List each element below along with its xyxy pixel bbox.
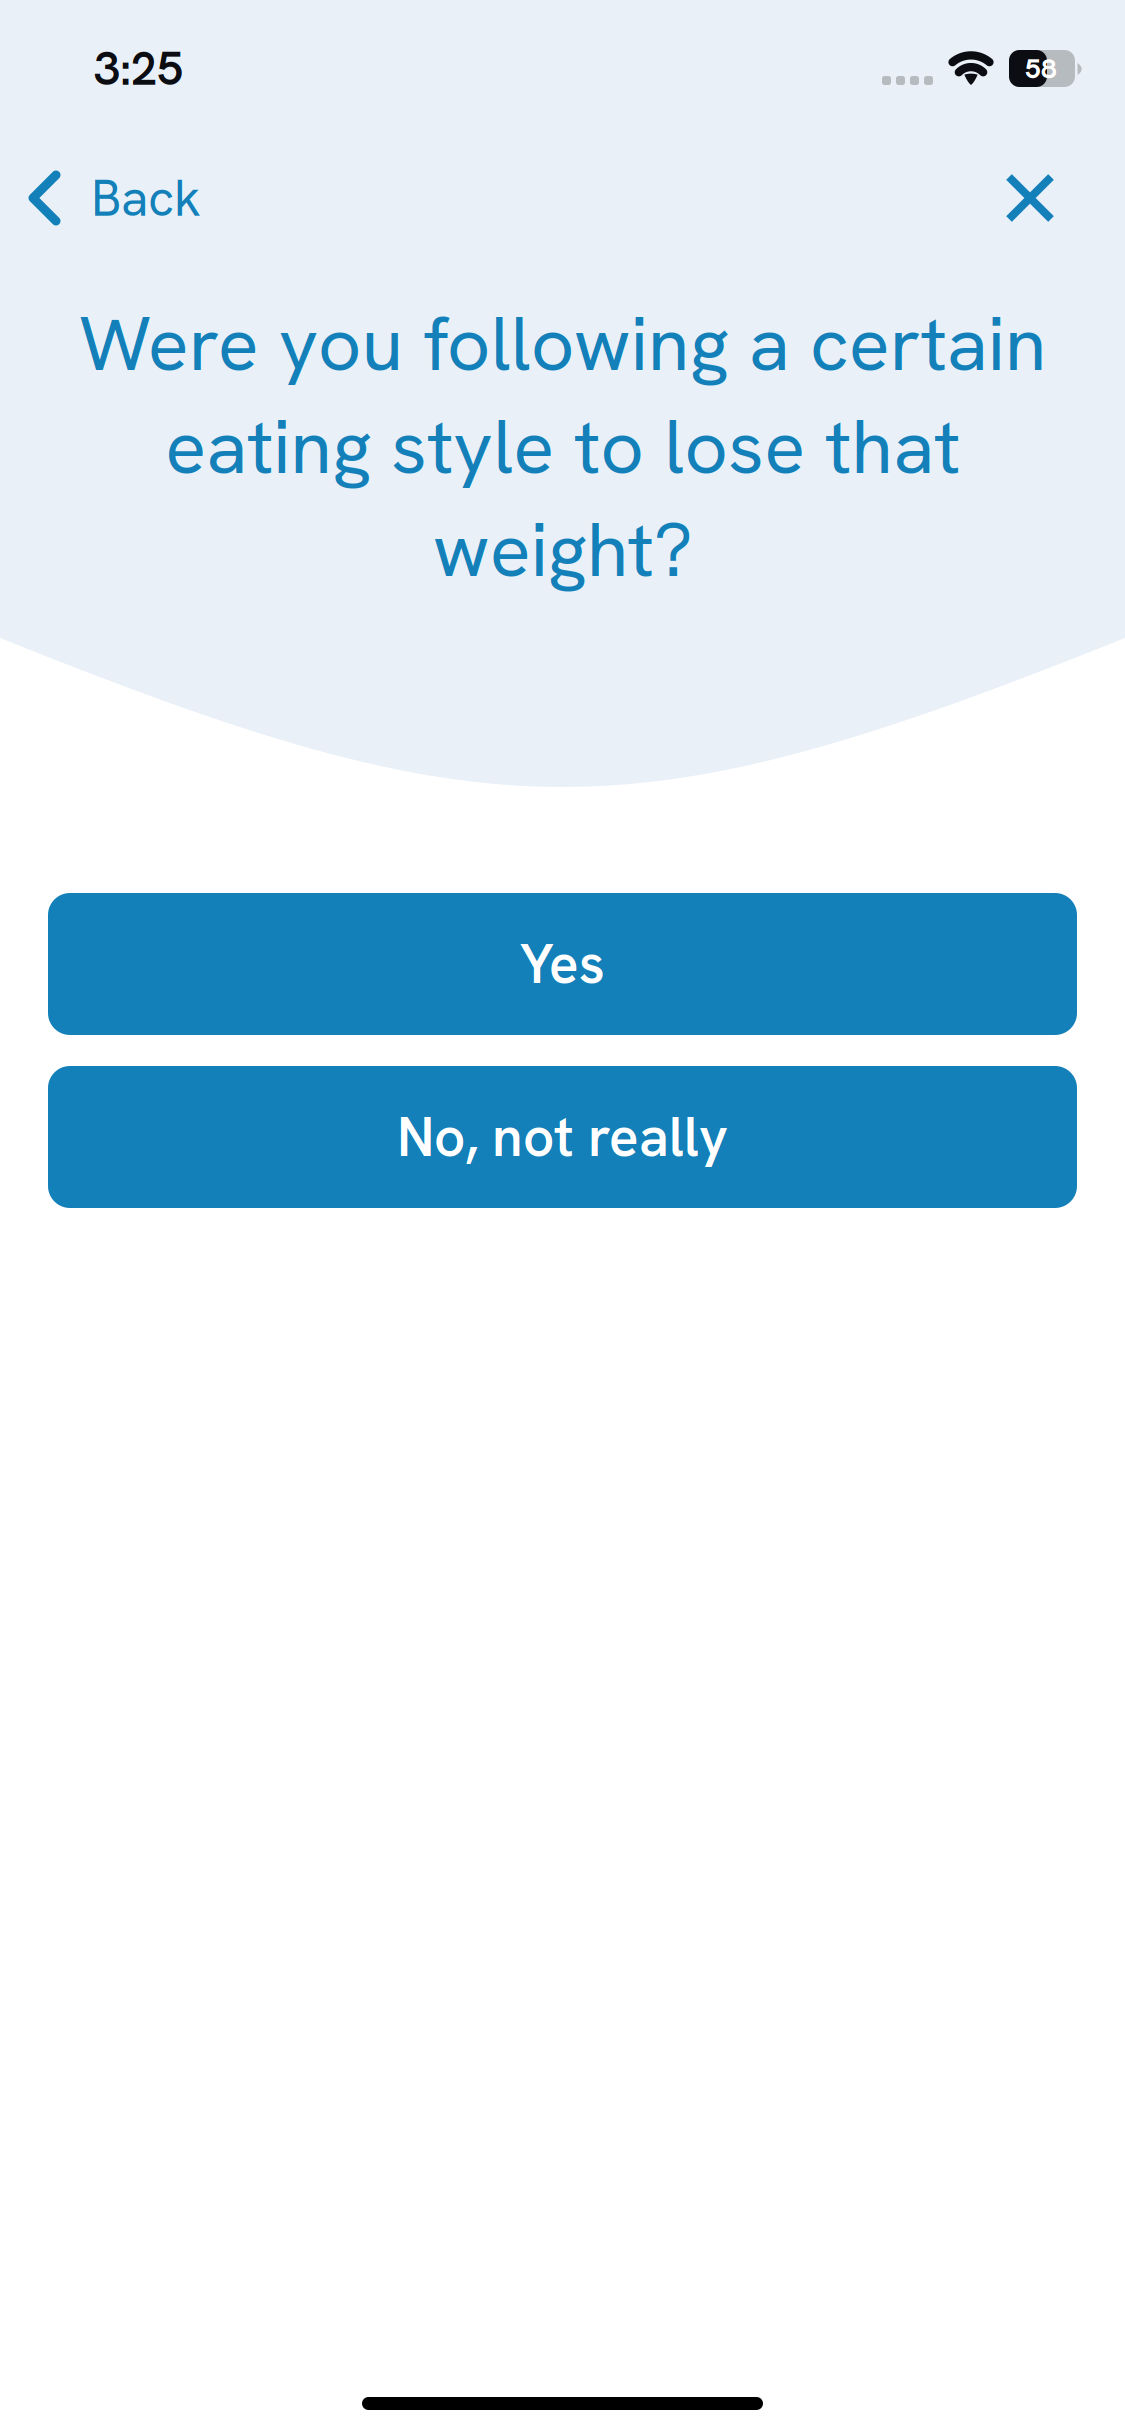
button[interactable]: Back bbox=[0, 150, 225, 246]
button[interactable]: Close bbox=[982, 150, 1078, 246]
button[interactable]: No, not really bbox=[48, 1066, 1077, 1208]
staticText: 3:25 bbox=[94, 38, 183, 99]
staticText: Were you following a certain eating styl… bbox=[78, 294, 1046, 599]
button[interactable]: Yes bbox=[48, 893, 1077, 1035]
staticText: Back bbox=[91, 165, 201, 231]
staticText: 58 bbox=[1025, 50, 1057, 87]
staticText: Yes bbox=[520, 928, 605, 1000]
staticText: No, not really bbox=[397, 1101, 728, 1173]
